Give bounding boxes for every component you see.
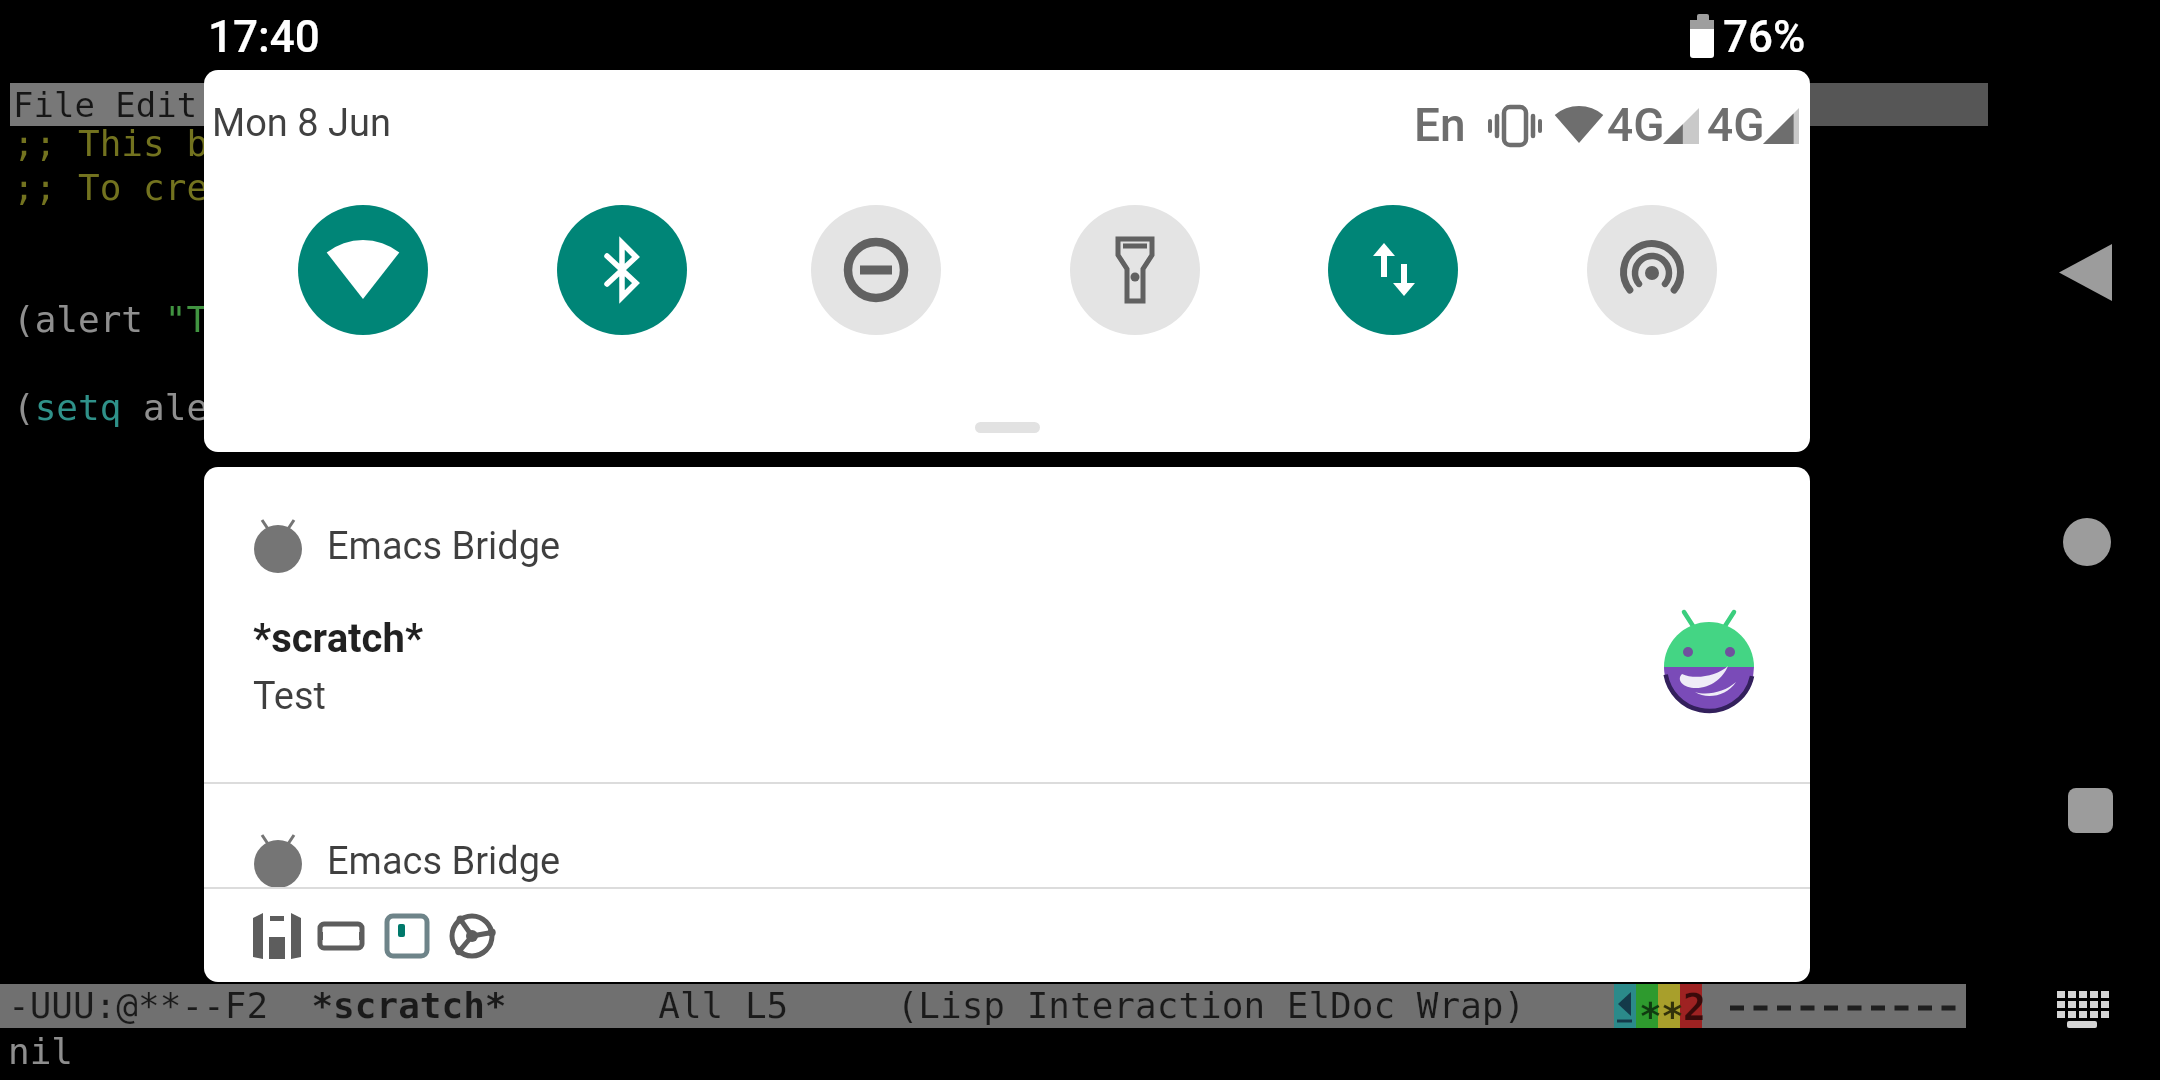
staticText: 4G (1607, 98, 1665, 152)
staticText: ;; This b (13, 123, 209, 165)
button[interactable] (313, 908, 369, 964)
button[interactable] (2055, 775, 2125, 845)
button[interactable] (1328, 205, 1458, 335)
staticText: Emacs Bridge (327, 839, 561, 884)
staticText: -UUU:@**--F2 *scratch* All L5 (Lisp Inte… (8, 985, 1526, 1027)
staticText: 76% (1723, 11, 1806, 63)
staticText: Mon 8 Jun (212, 101, 391, 146)
staticText: 4G (1707, 98, 1765, 152)
staticText: Test (253, 674, 327, 719)
button[interactable] (2052, 507, 2122, 577)
staticText: File Edit (13, 85, 198, 125)
button[interactable] (249, 908, 305, 964)
staticText: * (1639, 994, 1662, 1038)
button[interactable] (2049, 234, 2124, 311)
staticText: *scratch* (253, 615, 424, 662)
staticText: Emacs Bridge (327, 524, 561, 569)
button[interactable] (2053, 988, 2117, 1040)
button[interactable] (298, 205, 428, 335)
button[interactable] (811, 205, 941, 335)
button[interactable] (444, 908, 500, 964)
staticText: 2 (1683, 985, 1706, 1029)
staticText: En (1414, 98, 1466, 152)
button[interactable] (1587, 205, 1717, 335)
button[interactable] (1070, 205, 1200, 335)
staticText: * (1661, 994, 1684, 1038)
button[interactable] (557, 205, 687, 335)
staticText: nil (8, 1031, 74, 1073)
staticText: 17:40 (208, 11, 320, 63)
staticText: (alert "T (13, 299, 209, 341)
staticText: (setq ale (13, 387, 209, 429)
button[interactable]: Emacs Bridge (204, 784, 1810, 887)
button[interactable] (379, 908, 435, 964)
staticText: ;; To cre (13, 167, 209, 209)
button[interactable]: Emacs Bridge (204, 467, 1810, 782)
